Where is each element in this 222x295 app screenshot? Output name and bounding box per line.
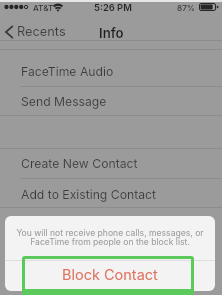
staticText: You will not receive phone calls, messag… (5, 228, 215, 247)
button[interactable]: Send Message (0, 86, 222, 116)
staticText: 87% (177, 3, 195, 13)
staticText: Block Contact (62, 266, 158, 284)
button[interactable]: Create New Contact (0, 148, 222, 178)
button[interactable]: Recents (0, 22, 74, 41)
staticText: Recents (17, 24, 66, 39)
staticText: Send Message (21, 94, 107, 109)
staticText: Create New Contact (21, 156, 138, 171)
staticText: AT&T (33, 3, 54, 13)
button[interactable]: Block Contact (5, 261, 215, 288)
staticText: FaceTime Audio (21, 64, 114, 79)
button[interactable]: FaceTime Audio (0, 56, 222, 86)
staticText: 5:26 PM (94, 2, 132, 13)
button[interactable]: Add to Existing Contact (0, 179, 222, 209)
staticText: Add to Existing Contact (21, 187, 157, 202)
staticText: Info (99, 25, 124, 41)
